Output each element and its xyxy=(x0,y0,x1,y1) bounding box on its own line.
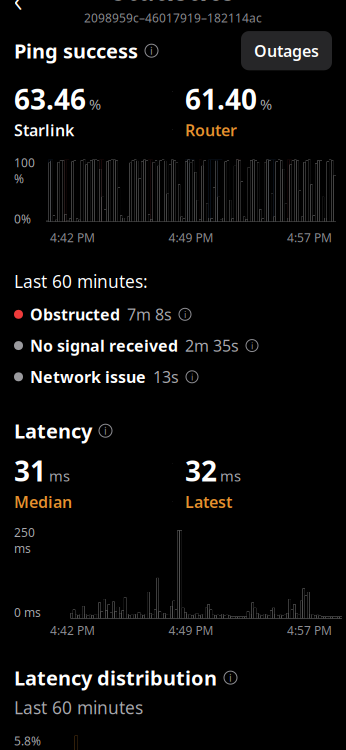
button[interactable]: About latency xyxy=(92,424,112,437)
staticText: 4:57 PM xyxy=(287,622,332,638)
staticText: 7m 8s xyxy=(127,304,172,325)
staticText: Statistics xyxy=(111,0,234,8)
staticText: Starlink xyxy=(14,119,74,141)
staticText: i xyxy=(191,371,193,383)
staticText: 0 ms xyxy=(14,604,41,620)
staticText: i xyxy=(150,44,153,58)
button[interactable]: About ping success xyxy=(138,44,158,57)
staticText: 100% xyxy=(14,155,35,187)
staticText: No signal received xyxy=(30,335,178,356)
staticText: Ping success xyxy=(14,37,138,64)
staticText: % xyxy=(89,94,101,114)
staticText: ‹ xyxy=(13,0,22,22)
staticText: i xyxy=(229,671,232,685)
staticText: Network issue xyxy=(30,366,146,387)
staticText: i xyxy=(184,308,186,320)
staticText: 2m 35s xyxy=(185,335,239,356)
staticText: Last 60 minutes xyxy=(14,696,143,719)
staticText: 4:42 PM xyxy=(50,230,95,246)
staticText: Latest xyxy=(185,491,232,512)
staticText: 250 ms xyxy=(14,524,35,556)
staticText: % xyxy=(260,94,272,114)
staticText: Obstructed xyxy=(30,304,120,325)
staticText: 2098959c–46017919–182114ac xyxy=(84,10,262,26)
staticText: 4:49 PM xyxy=(168,622,213,638)
button[interactable]: About Network issue xyxy=(186,371,198,383)
staticText: i xyxy=(104,424,107,438)
staticText: i xyxy=(251,339,253,352)
staticText: 5.8% xyxy=(14,733,41,749)
staticText: Router xyxy=(185,119,237,141)
staticText: 31 xyxy=(14,452,46,489)
staticText: 0% xyxy=(14,211,31,227)
staticText: 61.40 xyxy=(185,80,257,117)
staticText: 4:42 PM xyxy=(50,622,95,638)
staticText: Latency xyxy=(14,417,92,444)
staticText: 4:57 PM xyxy=(287,230,332,246)
staticText: ms xyxy=(220,466,241,485)
button[interactable]: About Obstructed xyxy=(179,308,191,320)
button[interactable]: About No signal received xyxy=(246,340,258,352)
staticText: Median xyxy=(14,491,72,512)
staticText: 63.46 xyxy=(14,80,86,117)
staticText: 13s xyxy=(153,366,179,387)
staticText: Last 60 minutes: xyxy=(14,270,148,293)
staticText: Latency distribution xyxy=(14,664,217,691)
staticText: 4:49 PM xyxy=(168,230,213,246)
staticText: ms xyxy=(49,466,70,485)
button[interactable]: Back xyxy=(0,0,38,19)
button[interactable]: About latency distribution xyxy=(217,671,237,684)
staticText: 32 xyxy=(185,452,217,489)
button[interactable]: Outages xyxy=(241,31,332,70)
staticText: Outages xyxy=(254,40,319,61)
